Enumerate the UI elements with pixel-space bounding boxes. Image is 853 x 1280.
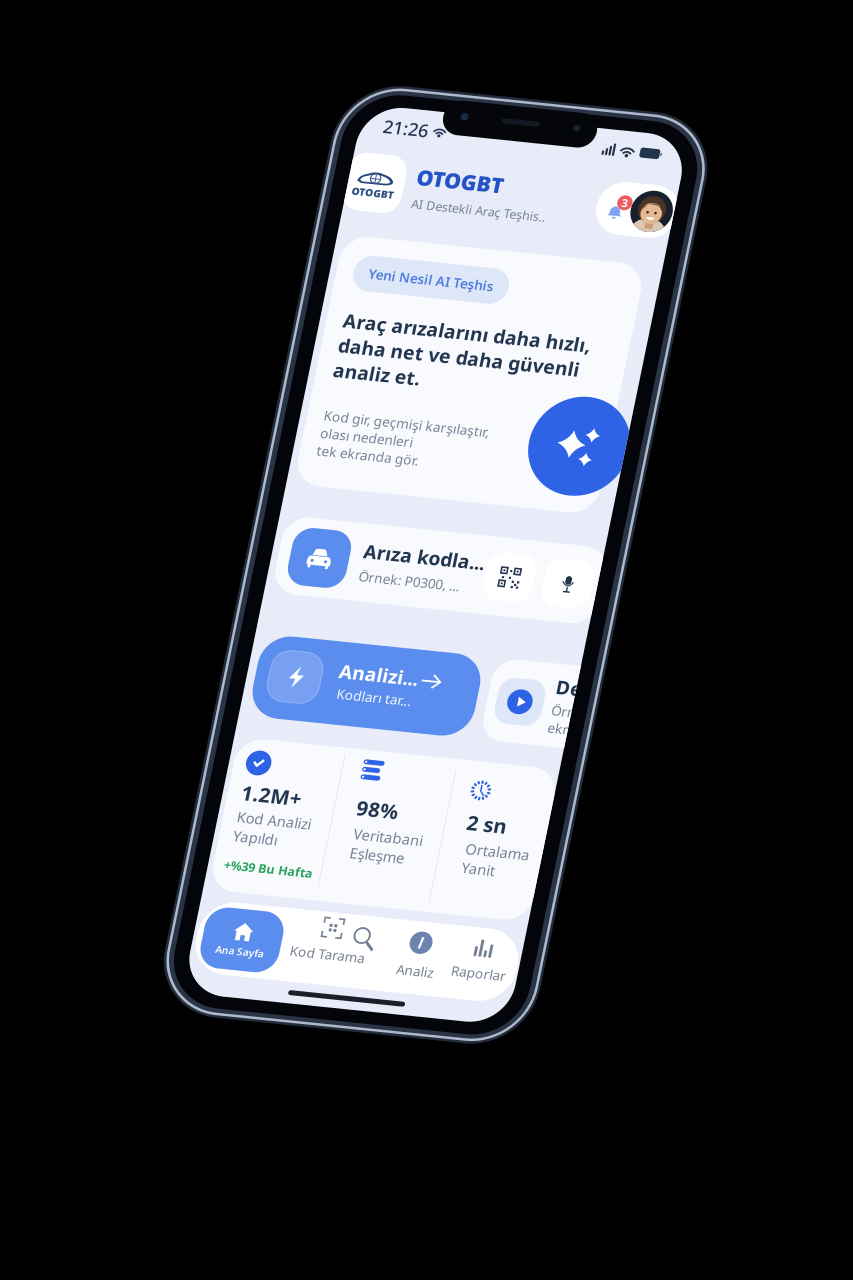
staticText: Araç arızalarını daha hızlı, daha net ve… bbox=[28, 245, 324, 335]
staticText: Veritabani Eşleşme bbox=[163, 860, 246, 906]
staticText: 2 sn bbox=[294, 828, 342, 860]
staticText: Örnek ekran bbox=[366, 689, 413, 732]
staticText: Analiz bbox=[246, 1017, 291, 1038]
staticText: Raporlar bbox=[311, 1012, 377, 1033]
button[interactable]: Ara bbox=[182, 976, 222, 1016]
button[interactable]: Analizi... bbox=[10, 644, 276, 744]
staticText: Kod Tarama bbox=[117, 1008, 207, 1029]
button[interactable]: Raporlar bbox=[304, 982, 384, 1056]
button[interactable]: Demo bbox=[288, 644, 478, 744]
staticText: Demo bbox=[366, 656, 433, 686]
button[interactable]: Sesli giriş bbox=[326, 518, 384, 576]
button[interactable]: Kod Tarama bbox=[110, 974, 214, 1048]
button[interactable]: Bildirimler ve profil bbox=[297, 61, 395, 125]
button[interactable]: Analiz bbox=[238, 980, 300, 1054]
staticText: 98% bbox=[161, 824, 211, 856]
button[interactable]: Kod tara bbox=[256, 518, 314, 576]
staticText: Ortalama Yanit bbox=[298, 864, 375, 910]
staticText: Arıza kodla... bbox=[107, 518, 252, 548]
